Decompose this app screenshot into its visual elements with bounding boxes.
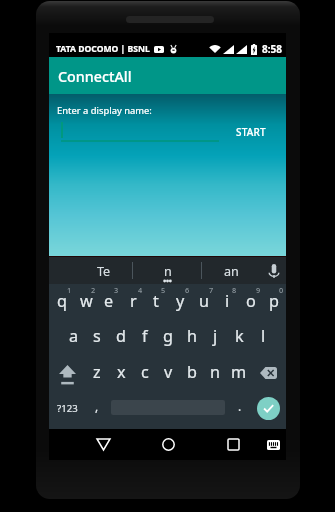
staticText: v: [164, 361, 173, 383]
button[interactable]: n: [133, 257, 202, 284]
staticText: Enter a display name:: [57, 104, 152, 117]
staticText: x: [117, 361, 126, 383]
button[interactable]: c: [133, 355, 157, 391]
staticText: e: [104, 290, 114, 312]
button[interactable]: k: [227, 319, 251, 355]
staticText: .: [238, 398, 242, 414]
button[interactable]: s: [85, 319, 109, 355]
staticText: z: [93, 361, 101, 383]
button[interactable]: Recents: [215, 429, 251, 460]
staticText: m: [231, 361, 247, 383]
button[interactable]: ,: [85, 390, 109, 426]
staticText: s: [93, 325, 101, 347]
staticText: 2: [91, 285, 96, 295]
staticText: ,: [95, 398, 99, 414]
button[interactable]: Home: [150, 429, 186, 460]
staticText: 6: [185, 285, 190, 295]
button[interactable]: a: [62, 319, 86, 355]
staticText: 8:58: [262, 42, 282, 56]
button[interactable]: Backspace: [251, 355, 286, 391]
button[interactable]: v: [156, 355, 180, 391]
button[interactable]: 0: [262, 284, 286, 320]
staticText: l: [261, 325, 266, 347]
staticText: 8: [232, 285, 237, 295]
staticText: w: [80, 290, 93, 312]
staticText: Te: [97, 263, 111, 280]
button[interactable]: Show keyboard: [255, 429, 291, 460]
staticText: START: [236, 125, 266, 139]
button[interactable]: Shift: [50, 355, 85, 391]
button[interactable]: j: [203, 319, 227, 355]
staticText: r: [130, 290, 137, 312]
button[interactable]: Enter: [252, 390, 286, 426]
button[interactable]: 1: [50, 284, 74, 320]
button[interactable]: h: [180, 319, 204, 355]
staticText: 1: [67, 285, 72, 295]
staticText: 9: [256, 285, 261, 295]
staticText: i: [225, 290, 230, 312]
staticText: a: [69, 325, 79, 347]
staticText: 4: [138, 285, 143, 295]
button[interactable]: g: [156, 319, 180, 355]
staticText: o: [246, 290, 256, 312]
staticText: h: [187, 325, 198, 347]
staticText: 0: [279, 285, 284, 295]
button[interactable]: Voice input: [262, 257, 286, 284]
button[interactable]: d: [109, 319, 133, 355]
staticText: b: [187, 361, 197, 383]
button[interactable]: Space: [108, 390, 228, 426]
button[interactable]: 6: [168, 284, 192, 320]
staticText: n: [164, 263, 172, 280]
button[interactable]: an: [201, 257, 262, 284]
button[interactable]: x: [109, 355, 133, 391]
staticText: q: [57, 290, 67, 312]
staticText: t: [153, 290, 159, 312]
staticText: g: [163, 325, 173, 347]
staticText: d: [116, 325, 126, 347]
button[interactable]: ConnectAll: [49, 57, 286, 94]
staticText: c: [141, 361, 149, 383]
button[interactable]: Back: [85, 429, 121, 460]
button[interactable]: .: [228, 390, 252, 426]
button[interactable]: Te: [74, 257, 133, 284]
button[interactable]: m: [227, 355, 251, 391]
button[interactable]: l: [251, 319, 275, 355]
button[interactable]: 2: [74, 284, 98, 320]
staticText: ?123: [57, 402, 78, 415]
staticText: j: [213, 325, 218, 347]
button[interactable]: b: [180, 355, 204, 391]
button[interactable]: 3: [97, 284, 121, 320]
button[interactable]: ?123: [50, 390, 85, 426]
staticText: TATA DOCOMO | BSNL: [56, 43, 150, 55]
staticText: an: [224, 263, 239, 280]
button[interactable]: START: [229, 118, 273, 146]
staticText: f: [142, 325, 148, 347]
button[interactable]: 7: [192, 284, 216, 320]
staticText: k: [235, 325, 244, 347]
button[interactable]: 5: [144, 284, 168, 320]
button[interactable]: 9: [239, 284, 263, 320]
button[interactable]: z: [85, 355, 109, 391]
staticText: 5: [161, 285, 166, 295]
staticText: u: [199, 290, 210, 312]
staticText: 3: [114, 285, 119, 295]
button[interactable]: 4: [121, 284, 145, 320]
staticText: ConnectAll: [58, 67, 132, 86]
button[interactable]: 8: [215, 284, 239, 320]
staticText: p: [269, 290, 279, 312]
staticText: n: [210, 361, 221, 383]
button[interactable]: n: [203, 355, 227, 391]
button[interactable]: f: [133, 319, 157, 355]
staticText: y: [176, 290, 185, 312]
staticText: 7: [209, 285, 214, 295]
button[interactable]: Display name field: [60, 120, 220, 142]
